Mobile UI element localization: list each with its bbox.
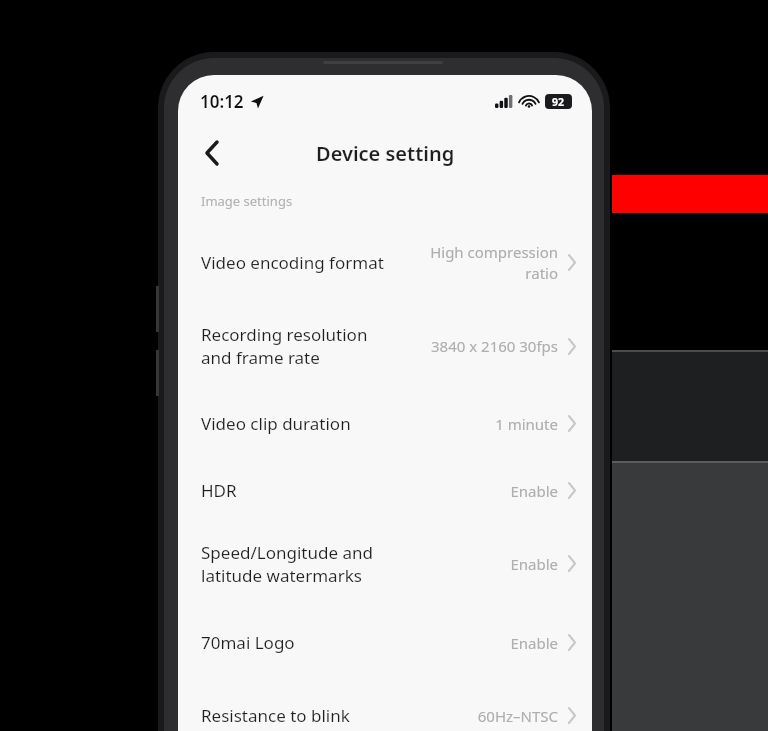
button[interactable]: Video clip duration <box>178 390 592 457</box>
staticText: 60Hz–NTSC <box>428 706 558 726</box>
staticText: Device setting <box>316 140 455 167</box>
staticText: Enable <box>438 481 558 501</box>
staticText: Video clip duration <box>201 412 438 435</box>
staticText: Video encoding format <box>201 251 408 274</box>
staticText: Speed/Longitude and latitude watermarks <box>201 541 438 587</box>
staticText: High compression ratio <box>408 242 558 284</box>
button[interactable]: 70mai Logo <box>178 603 592 682</box>
staticText: 70mai Logo <box>201 631 438 654</box>
staticText: Enable <box>438 633 558 653</box>
staticText: HDR <box>201 479 438 502</box>
staticText: 92 <box>552 95 565 109</box>
button[interactable]: Resistance to blink <box>178 682 592 731</box>
staticText: Resistance to blink <box>201 704 428 727</box>
button[interactable]: Speed/Longitude and latitude watermarks <box>178 524 592 603</box>
button[interactable]: HDR <box>178 457 592 524</box>
button[interactable]: Video encoding format <box>178 223 592 302</box>
staticText: 3840 x 2160 30fps <box>398 336 558 356</box>
staticText: Enable <box>438 554 558 574</box>
button[interactable]: Recording resolution and frame rate <box>178 302 592 390</box>
staticText: Image settings <box>201 192 293 210</box>
button[interactable]: Back <box>188 129 236 177</box>
staticText: 1 minute <box>438 414 558 434</box>
staticText: 10:12 <box>200 90 244 113</box>
staticText: Recording resolution and frame rate <box>201 323 398 369</box>
